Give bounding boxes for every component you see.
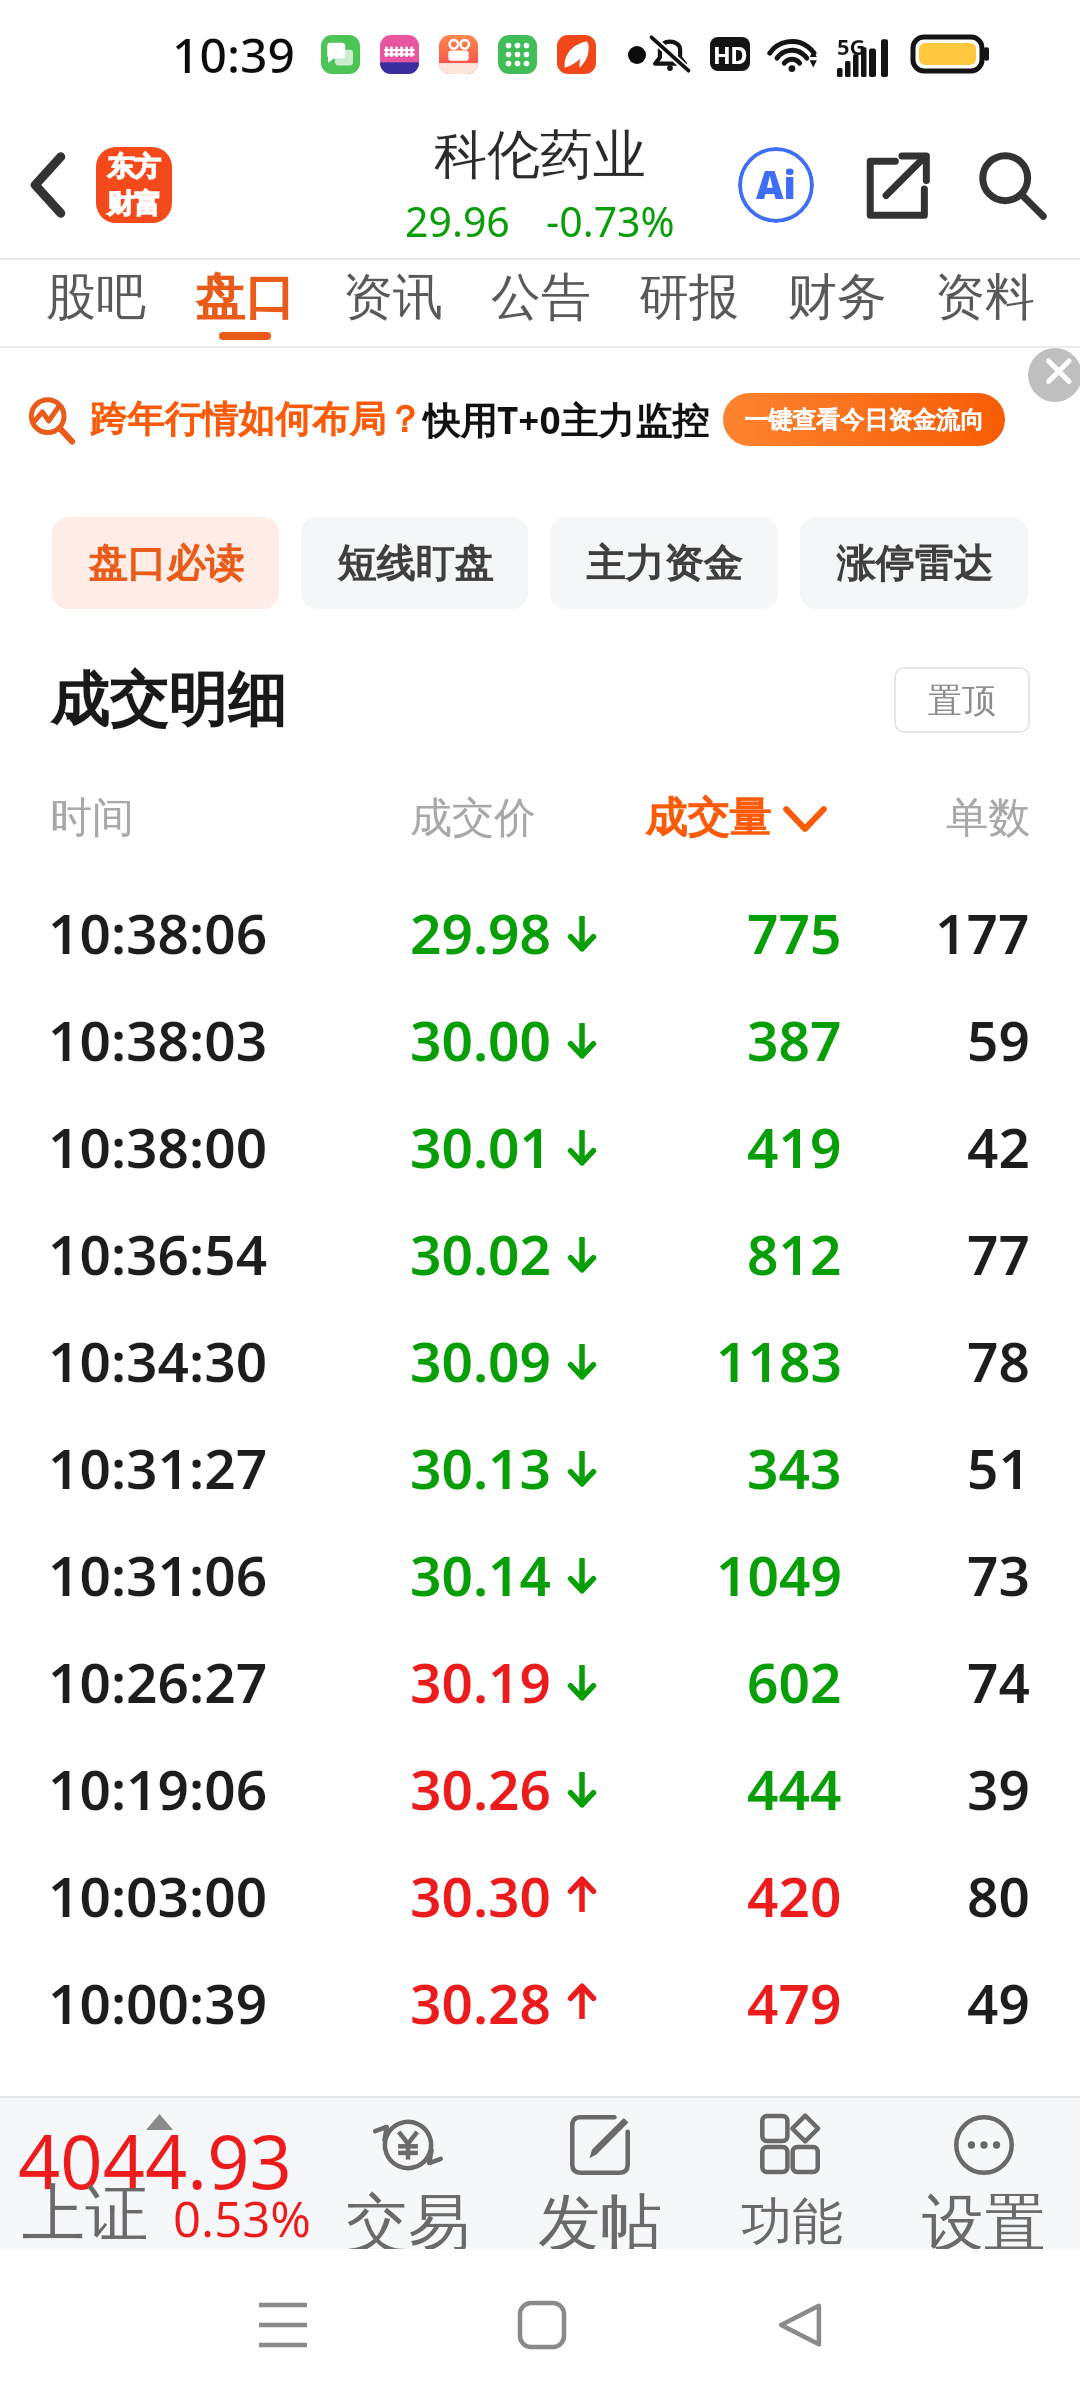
staticText: 59 [967, 1002, 1030, 1077]
staticText: 80 [967, 1858, 1030, 1933]
button[interactable]: Share [835, 126, 953, 244]
button[interactable]: 研报 [615, 260, 763, 346]
staticText: 发帖 [538, 2184, 662, 2262]
button[interactable]: 主力资金 [550, 517, 778, 609]
button[interactable]: Back [745, 2270, 855, 2380]
button[interactable]: 10:38:06 [0, 879, 1080, 986]
staticText: 功能 [741, 2190, 843, 2254]
staticText: 10:00:39 [48, 1965, 268, 2040]
button[interactable]: Recents [228, 2270, 338, 2380]
button[interactable]: 10:19:06 [0, 1735, 1080, 1842]
staticText: 上证 [22, 2174, 148, 2253]
staticText: 资料 [935, 266, 1035, 329]
staticText: 10:34:30 [48, 1323, 268, 1398]
staticText: 10:26:27 [48, 1644, 268, 1719]
button[interactable]: Back [0, 130, 96, 240]
staticText: 主力资金 [586, 539, 742, 588]
staticText: 财务 [787, 266, 887, 329]
staticText: 39 [967, 1751, 1030, 1826]
staticText: 研报 [639, 266, 739, 329]
staticText: Ai [756, 158, 796, 210]
button[interactable]: 涨停雷达 [800, 517, 1028, 609]
staticText: 财富 [107, 187, 161, 221]
staticText: 30.01 [410, 1109, 552, 1184]
staticText: 77 [967, 1216, 1030, 1291]
other: WiFi [768, 28, 820, 80]
button[interactable]: East Money logo [96, 147, 172, 223]
button[interactable]: 公告 [467, 260, 615, 346]
button[interactable]: 10:34:30 [0, 1307, 1080, 1414]
staticText: 10:38:06 [48, 895, 268, 970]
staticText: 10:38:00 [48, 1109, 268, 1184]
staticText: 成交价 [410, 792, 536, 845]
button[interactable]: 盘口 [170, 260, 319, 346]
staticText: 10:31:06 [48, 1537, 268, 1612]
staticText: 4044.93 [18, 2110, 292, 2211]
button[interactable]: 资讯 [319, 260, 467, 346]
staticText: 42 [967, 1109, 1030, 1184]
staticText: 5G [837, 31, 866, 61]
button[interactable]: 10:03:00 [0, 1842, 1080, 1949]
button[interactable]: 交易 [312, 2098, 504, 2249]
staticText: 快用T+0主力监控 [423, 394, 709, 445]
staticText: 10:03:00 [48, 1858, 268, 1933]
staticText: 跨年行情如何布局？ [90, 396, 423, 443]
button[interactable]: 10:36:54 [0, 1200, 1080, 1307]
staticText: 30.14 [410, 1537, 552, 1612]
button[interactable]: 10:38:00 [0, 1093, 1080, 1200]
staticText: 444 [747, 1751, 842, 1826]
staticText: 成交明细 [50, 663, 286, 737]
button[interactable]: AI assistant [717, 126, 835, 244]
staticText: 74 [967, 1644, 1030, 1719]
staticText: 30.28 [410, 1965, 552, 2040]
staticText: 30.30 [410, 1858, 552, 1933]
button[interactable]: 资料 [911, 260, 1059, 346]
staticText: 30.19 [410, 1644, 552, 1719]
staticText: 公告 [491, 266, 591, 329]
staticText: 419 [747, 1109, 842, 1184]
button[interactable]: 10:38:03 [0, 986, 1080, 1093]
staticText: 387 [747, 1002, 842, 1077]
staticText: HD [713, 39, 748, 70]
staticText: 设置 [922, 2184, 1046, 2262]
button[interactable]: Home [487, 2270, 597, 2380]
button[interactable]: 4044.93 [0, 2098, 312, 2249]
button[interactable]: 10:26:27 [0, 1628, 1080, 1735]
staticText: 交易 [346, 2184, 470, 2262]
staticText: 资讯 [343, 266, 443, 329]
button[interactable]: 财务 [763, 260, 911, 346]
staticText: 短线盯盘 [337, 539, 493, 588]
staticText: 东方 [107, 150, 161, 184]
button[interactable]: 功能 [696, 2098, 888, 2249]
staticText: 30.26 [410, 1751, 552, 1826]
staticText: 盘口 [195, 266, 295, 329]
staticText: 51 [967, 1430, 1030, 1505]
staticText: 602 [747, 1644, 842, 1719]
button[interactable]: 发帖 [504, 2098, 696, 2249]
staticText: 0.53% [173, 2185, 311, 2252]
staticText: 盘口必读 [88, 539, 244, 588]
button[interactable]: 股吧 [21, 260, 170, 346]
staticText: -0.73% [546, 193, 675, 249]
button[interactable]: 设置 [888, 2098, 1080, 2249]
button[interactable]: 10:00:39 [0, 1949, 1080, 2056]
button[interactable]: 盘口必读 [52, 517, 279, 609]
staticText: 343 [747, 1430, 842, 1505]
staticText: 30.09 [410, 1323, 552, 1398]
button[interactable]: 短线盯盘 [301, 517, 528, 609]
button[interactable]: 10:31:06 [0, 1521, 1080, 1628]
staticText: 775 [747, 895, 842, 970]
staticText: 成交量 [645, 792, 771, 845]
staticText: 420 [747, 1858, 842, 1933]
button[interactable]: 置顶 [894, 667, 1030, 733]
button[interactable]: Close banner [1028, 348, 1080, 402]
staticText: 30.02 [410, 1216, 552, 1291]
staticText: 49 [967, 1965, 1030, 2040]
staticText: 时间 [50, 792, 134, 845]
staticText: 177 [935, 895, 1030, 970]
other: Silent [648, 32, 692, 76]
staticText: 10:31:27 [48, 1430, 268, 1505]
button[interactable]: Search [953, 126, 1071, 244]
button[interactable]: 10:31:27 [0, 1414, 1080, 1521]
button[interactable]: 一键查看今日资金流向 [723, 393, 1005, 446]
